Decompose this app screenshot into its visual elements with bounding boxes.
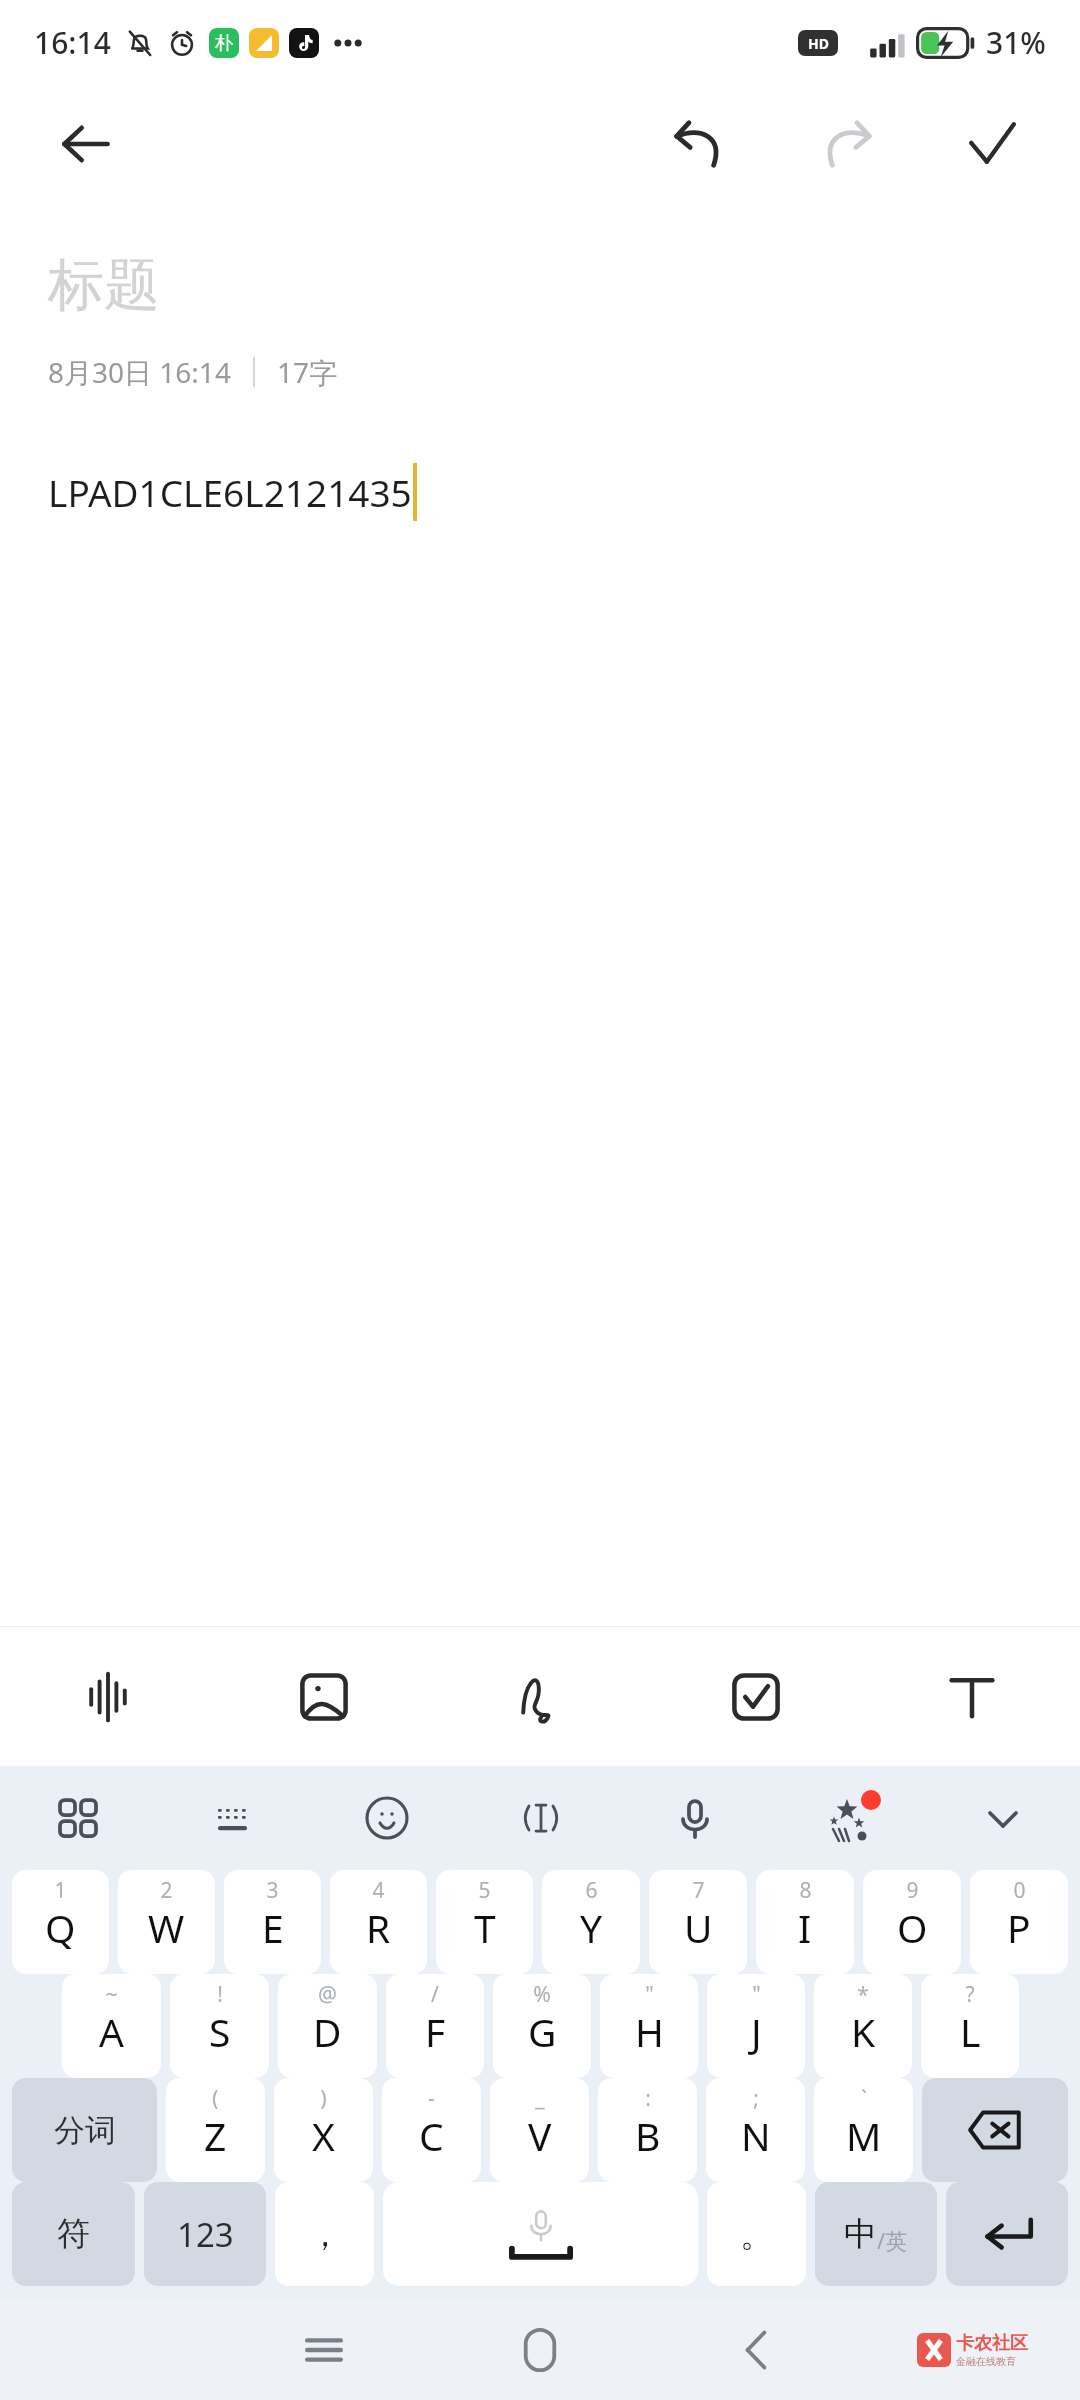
staticText: 2 [160, 1876, 173, 1905]
button[interactable]: Redo [804, 100, 892, 188]
staticText: 朴 [215, 32, 233, 55]
button[interactable]: * [814, 1974, 912, 2078]
staticText: H [635, 2005, 664, 2058]
button[interactable]: Hide keyboard [926, 1766, 1080, 1870]
staticText: 卡农社区 [956, 2332, 1028, 2355]
staticText: " [752, 1980, 761, 2009]
button[interactable]: 6 [542, 1870, 640, 1974]
button[interactable]: 0 [970, 1870, 1068, 1974]
staticText: F [425, 2005, 446, 2058]
staticText: * [857, 1980, 869, 2009]
button[interactable]: Checklist [648, 1627, 864, 1766]
staticText: 0 [1013, 1876, 1026, 1905]
button[interactable]: Done [948, 100, 1036, 188]
button[interactable]: ~ [62, 1974, 161, 2078]
staticText: 8 [799, 1876, 812, 1905]
staticText: 3 [266, 1876, 279, 1905]
button[interactable]: % [493, 1974, 591, 2078]
button[interactable]: 2 [118, 1870, 215, 1974]
button[interactable]: 符 [12, 2182, 135, 2286]
button[interactable]: 分词 [12, 2078, 157, 2182]
staticText: 9 [906, 1876, 919, 1905]
staticText: D [313, 2005, 342, 2058]
button[interactable]: Home [432, 2300, 648, 2400]
button[interactable]: Voice input [618, 1766, 772, 1870]
staticText: G [528, 2005, 557, 2058]
button[interactable]: Enter [946, 2182, 1068, 2286]
button[interactable]: " [600, 1974, 698, 2078]
staticText: ~ [105, 1980, 118, 2009]
button[interactable]: 。 [707, 2182, 806, 2286]
staticText: ` [861, 2084, 867, 2113]
staticText: 8月30日 16:14 [48, 353, 231, 391]
staticText: 7 [692, 1876, 705, 1905]
staticText: P [1007, 1901, 1031, 1954]
button[interactable]: ? [921, 1974, 1019, 2078]
staticText: 中 [844, 2213, 877, 2255]
button[interactable]: " [707, 1974, 805, 2078]
staticText: C [419, 2109, 444, 2162]
staticText: _ [535, 2084, 545, 2113]
button[interactable]: Image [216, 1627, 432, 1766]
button[interactable]: @ [278, 1974, 377, 2078]
staticText: A [99, 2005, 124, 2058]
button[interactable]: Keyboard layout [155, 1766, 310, 1870]
staticText: I [798, 1901, 812, 1954]
staticText: ( [212, 2084, 219, 2113]
button[interactable]: _ [490, 2078, 589, 2182]
button[interactable]: ` [814, 2078, 913, 2182]
staticText: S [209, 2005, 231, 2058]
button[interactable]: 123 [144, 2182, 266, 2286]
staticText: Z [204, 2109, 227, 2162]
staticText: " [645, 1980, 654, 2009]
button[interactable]: Space [383, 2182, 698, 2286]
staticText: T [474, 1901, 496, 1954]
button[interactable]: ! [170, 1974, 269, 2078]
button[interactable]: Voice [0, 1627, 216, 1766]
button[interactable]: Edit text [464, 1766, 618, 1870]
button[interactable]: 5 [436, 1870, 533, 1974]
button[interactable]: Backspace [922, 2078, 1068, 2182]
button[interactable]: ( [166, 2078, 265, 2182]
staticText: 金融在线教育 [956, 2355, 1016, 2368]
button[interactable]: 8 [756, 1870, 854, 1974]
staticText: K [851, 2005, 876, 2058]
button[interactable]: 中 [815, 2182, 937, 2286]
staticText: 5 [478, 1876, 491, 1905]
staticText: 31% [986, 22, 1046, 63]
staticText: L [960, 2005, 981, 2058]
button[interactable]: : [598, 2078, 697, 2182]
button[interactable]: 3 [224, 1870, 321, 1974]
button[interactable]: ; [706, 2078, 805, 2182]
staticText: U [684, 1901, 713, 1954]
staticText: : [645, 2084, 651, 2113]
button[interactable]: Emoji [310, 1766, 464, 1870]
button[interactable]: Recents [216, 2300, 432, 2400]
button[interactable]: / [386, 1974, 484, 2078]
button[interactable]: 1 [12, 1870, 109, 1974]
button[interactable]: Handwriting [432, 1627, 648, 1766]
button[interactable]: Undo [654, 100, 742, 188]
staticText: B [635, 2109, 661, 2162]
staticText: @ [318, 1980, 337, 2009]
button[interactable]: 9 [863, 1870, 961, 1974]
button[interactable]: - [382, 2078, 481, 2182]
button[interactable]: Text style [864, 1627, 1080, 1766]
button[interactable]: 4 [330, 1870, 427, 1974]
staticText: LPAD1CLE6L2121435 [48, 467, 412, 517]
staticText: 符 [57, 2213, 90, 2255]
button[interactable]: ) [274, 2078, 373, 2182]
button[interactable]: AI assistant [772, 1766, 926, 1870]
staticText: O [897, 1901, 928, 1954]
staticText: / [431, 1980, 439, 2009]
staticText: N [741, 2109, 771, 2162]
button[interactable]: Back [648, 2300, 864, 2400]
button[interactable]: 7 [649, 1870, 747, 1974]
staticText: R [366, 1901, 391, 1954]
staticText: ， [308, 2213, 342, 2256]
button[interactable]: Keyboard modes [0, 1766, 155, 1870]
button[interactable]: Back [44, 102, 128, 186]
button[interactable]: ， [275, 2182, 374, 2286]
staticText: V [528, 2109, 552, 2162]
staticText: ) [320, 2084, 327, 2113]
